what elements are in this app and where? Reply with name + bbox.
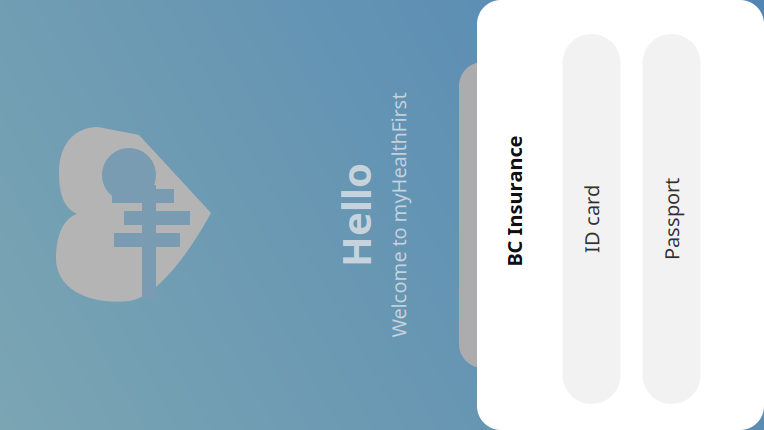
button[interactable]: ID card (193, 396, 563, 430)
staticText: Hello (330, 162, 434, 215)
staticText: Welcome to myHealthFirst (259, 218, 504, 245)
staticText: BC Insurance (330, 334, 461, 361)
